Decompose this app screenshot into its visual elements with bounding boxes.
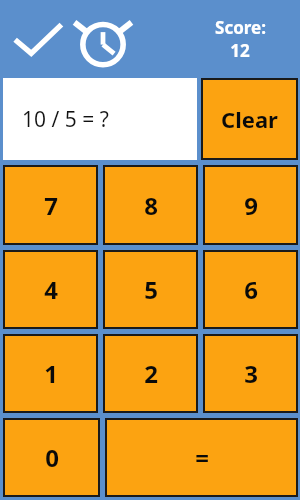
button[interactable]: Clear [201,78,298,160]
staticText: 6 [244,273,258,306]
button[interactable]: 7 [3,165,98,245]
button[interactable]: Timer [72,8,134,70]
staticText: = [195,441,209,474]
staticText: 4 [44,273,58,306]
button[interactable]: = [105,418,298,497]
button[interactable]: 8 [103,165,198,245]
staticText: Clear [221,104,278,134]
staticText: 10 / 5 = ? [22,105,109,134]
button[interactable]: 3 [203,334,298,413]
staticText: 12 [230,39,250,62]
button[interactable]: 5 [103,250,198,329]
staticText: 1 [44,357,58,390]
staticText: 7 [44,189,58,222]
staticText: 0 [45,441,59,474]
button[interactable]: 4 [3,250,98,329]
button[interactable]: 10 / 5 = ? [3,78,197,160]
button[interactable]: Check answer [8,9,68,69]
staticText: 3 [244,357,258,390]
button[interactable]: 0 [3,418,100,497]
staticText: Score: [215,16,266,39]
staticText: 2 [144,357,158,390]
button[interactable]: 6 [203,250,298,329]
staticText: 9 [244,189,258,222]
button[interactable]: 2 [103,334,198,413]
staticText: 8 [144,189,158,222]
staticText: 5 [144,273,158,306]
button[interactable]: 9 [203,165,298,245]
button[interactable]: 1 [3,334,98,413]
